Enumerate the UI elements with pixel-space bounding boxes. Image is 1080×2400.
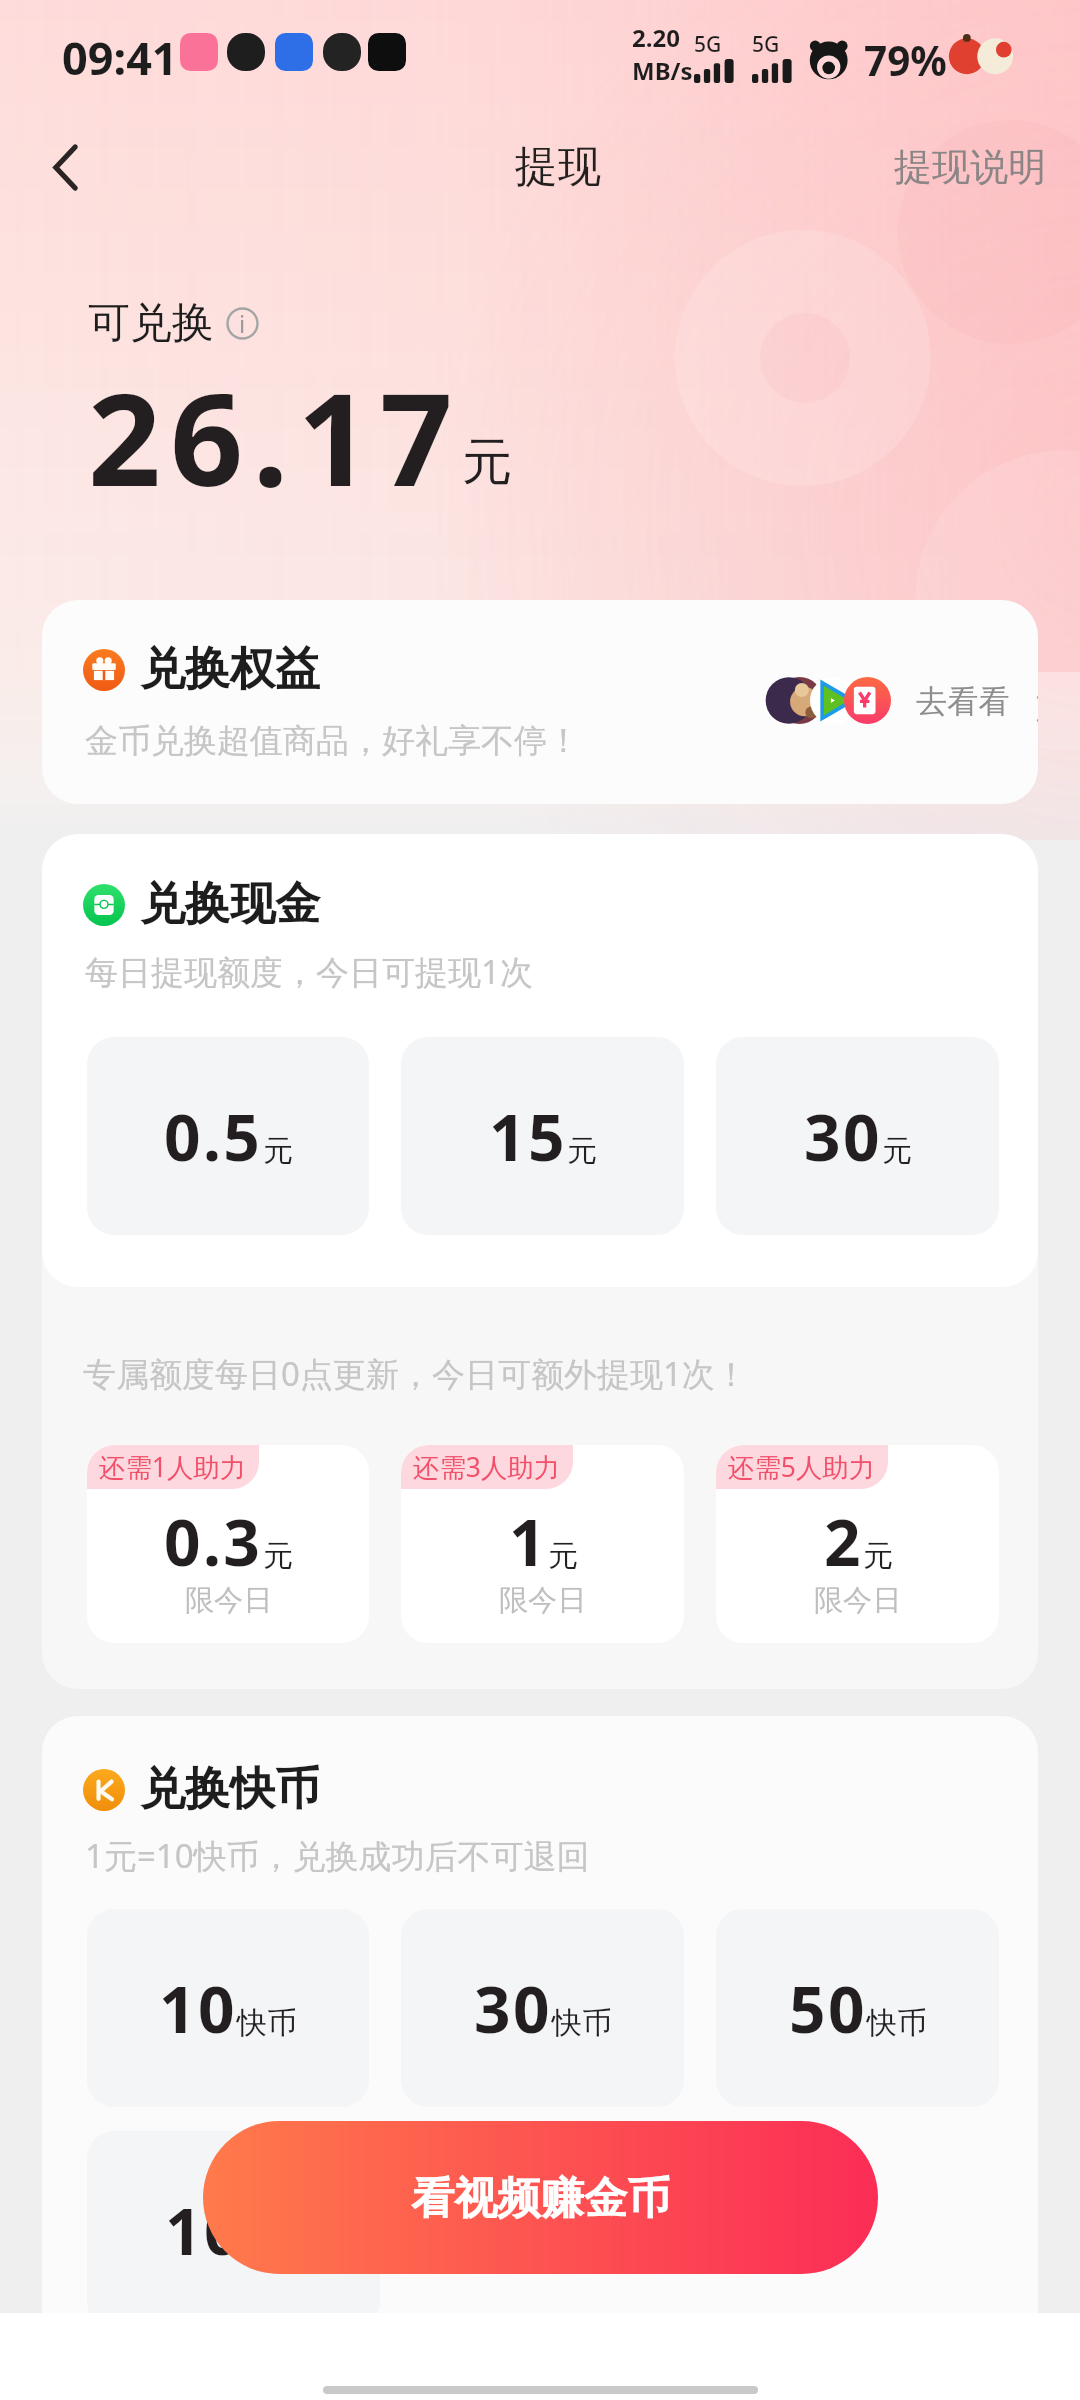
staticText: 2: [824, 1498, 863, 1585]
staticText: 还需1人助力: [99, 1449, 247, 1485]
staticText: 10: [159, 1965, 237, 2052]
staticText: 元: [548, 1537, 578, 1575]
staticText: 可兑换: [88, 297, 214, 350]
staticText: 还需5人助力: [728, 1449, 876, 1485]
button[interactable]: 50: [716, 1909, 999, 2107]
staticText: 元: [263, 1132, 293, 1170]
staticText: 30: [804, 1093, 882, 1180]
button[interactable]: 30: [716, 1037, 999, 1235]
button[interactable]: 10: [87, 1909, 369, 2107]
staticText: 26.17: [88, 350, 463, 524]
staticText: 0.3: [164, 1498, 263, 1585]
staticText: 元: [882, 1132, 912, 1170]
button[interactable]: 10: [87, 2131, 380, 2313]
staticText: 0.5: [164, 1093, 263, 1180]
staticText: 限今日: [185, 1582, 273, 1619]
button[interactable]: 提现说明: [861, 119, 1080, 215]
button[interactable]: Back: [20, 122, 110, 212]
staticText: 去看看: [916, 682, 1010, 721]
button[interactable]: 15: [401, 1037, 684, 1235]
staticText: 兑换权益: [140, 641, 320, 698]
staticText: 看视频赚金币: [411, 2171, 671, 2225]
button[interactable]: 还需1人助力: [87, 1445, 369, 1643]
staticText: 79%: [864, 33, 947, 88]
staticText: MB/s: [632, 54, 693, 87]
staticText: 提现说明: [894, 143, 1047, 191]
staticText: 30: [474, 1965, 552, 2052]
staticText: 元: [462, 430, 513, 493]
staticText: 提现: [515, 140, 601, 194]
staticText: 金币兑换超值商品，好礼享不停！: [85, 720, 580, 762]
staticText: 每日提现额度，今日可提现1次: [85, 949, 533, 994]
button[interactable]: Info: [226, 307, 259, 340]
staticText: 元: [567, 1132, 597, 1170]
staticText: 兑换现金: [140, 876, 320, 933]
staticText: 15: [489, 1093, 567, 1180]
button[interactable]: 兑换权益: [42, 600, 1038, 804]
button[interactable]: 看视频赚金币: [203, 2121, 878, 2274]
staticText: 1: [509, 1498, 548, 1585]
staticText: 09:41: [62, 27, 178, 88]
staticText: 元: [263, 1537, 293, 1575]
staticText: i: [239, 307, 246, 340]
staticText: 还需3人助力: [413, 1449, 561, 1485]
staticText: 快币: [867, 2004, 927, 2042]
staticText: 兑换快币: [140, 1761, 320, 1818]
staticText: 限今日: [814, 1582, 902, 1619]
staticText: 快币: [237, 2004, 297, 2042]
staticText: 2.20: [632, 21, 680, 54]
button[interactable]: 还需5人助力: [716, 1445, 999, 1643]
staticText: 1元=10快币，兑换成功后不可退回: [85, 1833, 590, 1878]
staticText: 5G: [752, 30, 780, 59]
button[interactable]: 还需3人助力: [401, 1445, 684, 1643]
staticText: 快币: [552, 2004, 612, 2042]
staticText: 专属额度每日0点更新，今日可额外提现1次！: [83, 1351, 748, 1396]
staticText: 限今日: [499, 1582, 587, 1619]
button[interactable]: 0.5: [87, 1037, 369, 1235]
staticText: 50: [789, 1965, 867, 2052]
staticText: 10: [165, 2187, 243, 2274]
staticText: 元: [863, 1537, 893, 1575]
button[interactable]: 30: [401, 1909, 684, 2107]
staticText: 5G: [694, 30, 722, 59]
